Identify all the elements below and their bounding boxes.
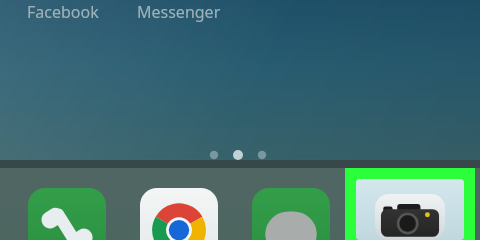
button[interactable]: Messaging bbox=[252, 188, 330, 240]
staticText: Facebook bbox=[27, 1, 99, 23]
button[interactable]: Facebook bbox=[27, 1, 107, 25]
button[interactable]: Camera bbox=[345, 168, 475, 240]
button[interactable]: Phone bbox=[28, 188, 106, 240]
staticText: Messenger bbox=[137, 1, 221, 23]
button[interactable]: Messenger bbox=[137, 1, 232, 25]
button[interactable]: Chrome bbox=[140, 188, 218, 240]
